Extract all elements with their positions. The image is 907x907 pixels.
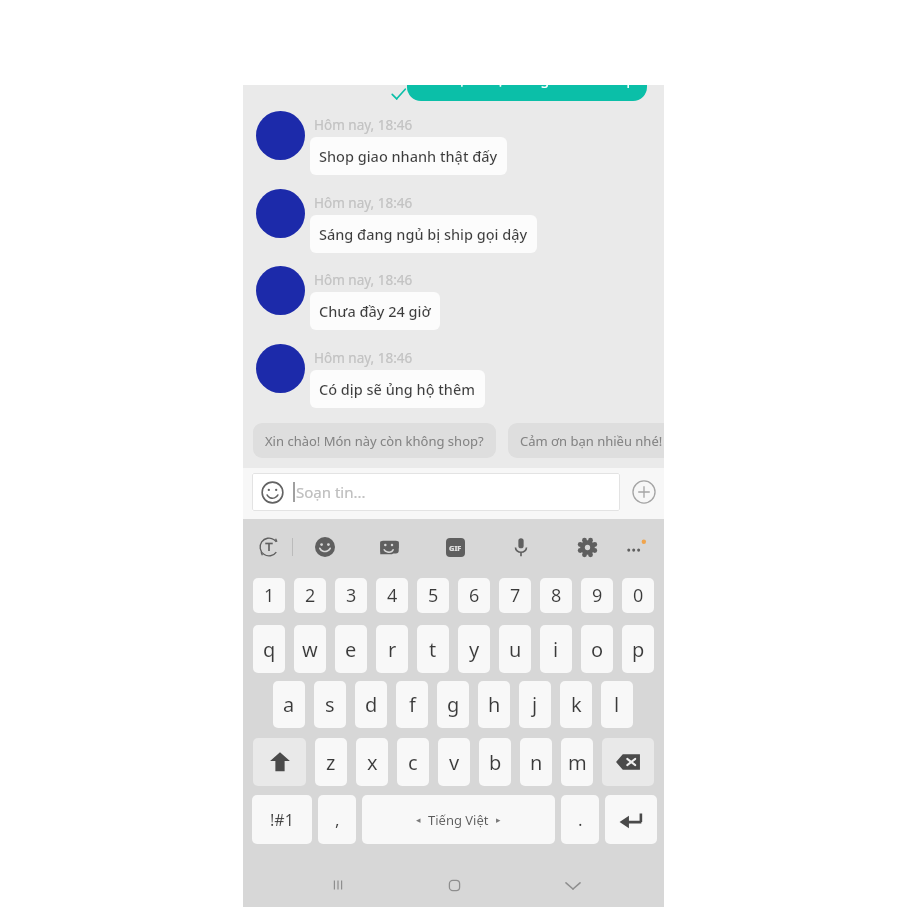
button[interactable]: f xyxy=(396,681,428,728)
staticText: v xyxy=(449,749,460,776)
button[interactable]: Enter xyxy=(605,795,657,844)
button[interactable]: u xyxy=(499,625,531,673)
staticText: n xyxy=(530,749,543,776)
staticText: l xyxy=(614,691,620,718)
button[interactable]: e xyxy=(335,625,367,673)
button[interactable]: Stickers xyxy=(373,531,405,563)
button[interactable]: 7 xyxy=(499,578,531,613)
staticText: Xin chào! Món này còn không shop? xyxy=(265,432,484,450)
button[interactable]: Contact avatar xyxy=(256,111,305,160)
button[interactable]: Có dịp sẽ ủng hộ thêm xyxy=(310,370,485,408)
staticText: q xyxy=(263,636,276,663)
button[interactable]: z xyxy=(315,738,347,786)
button[interactable]: 4 xyxy=(376,578,408,613)
button[interactable]: Contact avatar xyxy=(256,344,305,393)
button[interactable]: o xyxy=(581,625,613,673)
staticText: g xyxy=(447,691,460,718)
staticText: y xyxy=(469,636,480,663)
button[interactable]: Xin chào! Món này còn không shop? xyxy=(253,423,496,458)
button[interactable]: s xyxy=(314,681,346,728)
button[interactable]: a xyxy=(273,681,305,728)
button[interactable]: 1 xyxy=(253,578,285,613)
button[interactable]: Shop giao nhanh thật đấy xyxy=(310,137,507,175)
button[interactable]: 8 xyxy=(540,578,572,613)
button[interactable]: r xyxy=(376,625,408,673)
staticText: b xyxy=(489,749,502,776)
staticText: . xyxy=(578,808,583,831)
staticText: w xyxy=(302,636,318,663)
button[interactable]: t xyxy=(417,625,449,673)
staticText: j xyxy=(532,691,538,718)
button[interactable]: l xyxy=(601,681,633,728)
staticText: 9 xyxy=(592,583,603,608)
staticText: k xyxy=(571,691,582,718)
staticText: 8 xyxy=(551,583,562,608)
button[interactable]: Sáng đang ngủ bị ship gọi dậy xyxy=(310,215,537,253)
button[interactable]: Add attachment xyxy=(630,478,657,506)
button[interactable]: Translate xyxy=(253,531,285,563)
button[interactable]: Back xyxy=(551,863,595,907)
staticText: 5 xyxy=(428,583,439,608)
staticText: r xyxy=(388,636,397,663)
button[interactable]: GIF xyxy=(439,531,471,563)
button[interactable]: Emoji xyxy=(309,531,341,563)
button[interactable]: c xyxy=(397,738,429,786)
button[interactable]: Contact avatar xyxy=(256,189,305,238)
button[interactable]: Voice input xyxy=(505,531,537,563)
button[interactable]: Chưa đầy 24 giờ xyxy=(310,292,440,330)
button[interactable]: Soạn tin... xyxy=(252,473,620,511)
button[interactable]: y xyxy=(458,625,490,673)
staticText: 6 xyxy=(469,583,480,608)
staticText: s xyxy=(325,691,335,718)
staticText: 1 xyxy=(264,583,275,608)
button[interactable]: Cảm ơn bạn nhiều nhé! xyxy=(508,423,664,458)
button[interactable]: Đã nhận được hàng rồi nhé shop xyxy=(407,85,647,101)
staticText: 4 xyxy=(387,583,398,608)
button[interactable]: 2 xyxy=(294,578,326,613)
button[interactable]: ◂ xyxy=(362,795,555,844)
staticText: Tiếng Việt xyxy=(428,811,489,829)
staticText: Hôm nay, 18:46 xyxy=(314,349,413,367)
staticText: 3 xyxy=(346,583,357,608)
button[interactable]: m xyxy=(561,738,593,786)
button[interactable]: d xyxy=(355,681,387,728)
button[interactable]: More xyxy=(619,531,651,563)
button[interactable]: Shift xyxy=(253,738,306,786)
button[interactable]: Settings xyxy=(571,531,603,563)
button[interactable]: p xyxy=(622,625,654,673)
button[interactable]: Home xyxy=(432,863,476,907)
button[interactable]: , xyxy=(318,795,356,844)
button[interactable]: j xyxy=(519,681,551,728)
button[interactable]: 9 xyxy=(581,578,613,613)
staticText: 0 xyxy=(633,583,644,608)
staticText: Cảm ơn bạn nhiều nhé! xyxy=(520,432,662,450)
button[interactable]: g xyxy=(437,681,469,728)
button[interactable]: v xyxy=(438,738,470,786)
button[interactable]: Backspace xyxy=(602,738,654,786)
staticText: z xyxy=(326,749,336,776)
staticText: , xyxy=(335,808,340,831)
staticText: ▸ xyxy=(496,815,501,825)
button[interactable]: Contact avatar xyxy=(256,266,305,315)
staticText: f xyxy=(409,691,416,718)
button[interactable]: q xyxy=(253,625,285,673)
button[interactable]: h xyxy=(478,681,510,728)
button[interactable]: k xyxy=(560,681,592,728)
button[interactable]: b xyxy=(479,738,511,786)
button[interactable]: 6 xyxy=(458,578,490,613)
staticText: Hôm nay, 18:46 xyxy=(314,194,413,212)
button[interactable]: . xyxy=(561,795,599,844)
staticText: x xyxy=(367,749,378,776)
button[interactable]: x xyxy=(356,738,388,786)
button[interactable]: 0 xyxy=(622,578,654,613)
button[interactable]: !#1 xyxy=(252,795,312,844)
button[interactable]: Recents xyxy=(316,863,360,907)
button[interactable]: i xyxy=(540,625,572,673)
button[interactable]: 5 xyxy=(417,578,449,613)
staticText: Hôm nay, 18:46 xyxy=(314,116,413,134)
staticText: t xyxy=(429,636,437,663)
button[interactable]: w xyxy=(294,625,326,673)
staticText: !#1 xyxy=(270,809,294,831)
button[interactable]: n xyxy=(520,738,552,786)
button[interactable]: 3 xyxy=(335,578,367,613)
